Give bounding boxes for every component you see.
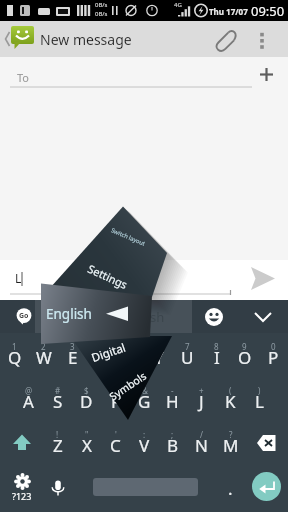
staticText: 9 [242,341,247,352]
button[interactable]: X [72,421,101,465]
staticText: L [255,390,264,413]
button[interactable]: A [14,377,43,421]
button[interactable]: M [216,421,245,465]
staticText: ; [171,429,174,440]
button[interactable]: V [130,421,159,465]
staticText: J [199,390,204,413]
staticText: V [139,434,150,457]
staticText: F [111,390,120,413]
staticText: English [46,305,92,323]
button[interactable]: T [115,333,144,377]
staticText: H [166,390,179,413]
staticText: $ [84,385,89,396]
button[interactable]: Q [0,333,29,377]
staticText: Settings [86,261,130,292]
button[interactable]: W [29,333,58,377]
button[interactable]: I [202,333,231,377]
staticText: D [80,390,93,413]
button[interactable]: Z [43,421,72,465]
staticText: N [195,434,208,457]
button[interactable]: Y [144,333,173,377]
button[interactable]: R [86,333,115,377]
staticText: 4 [98,341,103,352]
staticText: C [110,434,121,457]
button[interactable]: . [216,465,245,510]
staticText: L [15,270,22,286]
staticText: / [200,429,203,440]
staticText: A [23,390,34,413]
button[interactable]: S [43,377,72,421]
staticText: T [125,346,135,369]
button[interactable]: Backspace [245,421,288,465]
staticText: Digital [89,340,128,366]
staticText: 1 [12,341,17,352]
button[interactable]: U [173,333,202,377]
staticText: R [95,346,106,369]
button[interactable]: E [58,333,87,377]
staticText: 7 [185,341,190,352]
button[interactable]: Keyboard menu [9,302,38,331]
button[interactable]: F [101,377,130,421]
staticText: & [142,385,148,396]
staticText: Go [19,311,29,321]
staticText: P [268,346,279,369]
staticText: O [238,346,252,369]
button[interactable]: Send [250,266,276,292]
button[interactable]: Shift [0,421,43,465]
button[interactable]: G [130,377,159,421]
button[interactable]: Hide keyboard [248,302,278,332]
staticText: " [85,429,89,440]
button[interactable]: K [216,377,245,421]
staticText: Switch layout [110,226,147,248]
staticText: B [167,434,179,457]
staticText: Q [8,346,22,369]
staticText: : [143,429,146,440]
staticText: 2 [41,341,46,352]
staticText: U [181,346,194,369]
staticText: Symbols [107,368,149,404]
staticText: 09:50 [251,2,285,20]
staticText: Y [154,346,164,369]
button[interactable]: O [230,333,259,377]
button[interactable]: English [35,300,192,333]
staticText: ? [229,429,233,440]
staticText: X [82,434,92,457]
staticText: ' [115,429,117,440]
staticText: K [225,390,236,413]
button[interactable]: Enter [252,472,281,501]
button[interactable]: ?123 [0,465,43,510]
staticText: 3 [70,341,75,352]
staticText: @ [25,385,33,396]
button[interactable]: H [158,377,187,421]
button[interactable]: N [187,421,216,465]
staticText: I [214,346,220,369]
staticText: Z [53,434,63,457]
staticText: M [223,434,239,457]
button[interactable]: Voice input [43,465,72,510]
staticText: ( [229,385,232,396]
staticText: To [17,70,30,85]
staticText: E [68,346,78,369]
button[interactable]: L [245,377,274,421]
button[interactable]: Add recipient [252,60,280,88]
staticText: - [171,385,174,396]
button[interactable]: D [72,377,101,421]
staticText: New message [40,30,132,49]
button[interactable]: New message [0,21,288,57]
button[interactable]: Emoji [199,302,229,332]
staticText: # [55,385,61,396]
button[interactable]: P [259,333,288,377]
staticText: English [120,308,165,326]
button[interactable]: More options [244,21,280,57]
button[interactable]: J [187,377,216,421]
staticText: G [138,390,151,413]
button[interactable]: C [101,421,130,465]
staticText: . [228,477,233,500]
button[interactable]: Attach [205,21,241,57]
staticText: 0 [271,341,276,352]
staticText: ) [258,385,261,396]
button[interactable]: B [158,421,187,465]
